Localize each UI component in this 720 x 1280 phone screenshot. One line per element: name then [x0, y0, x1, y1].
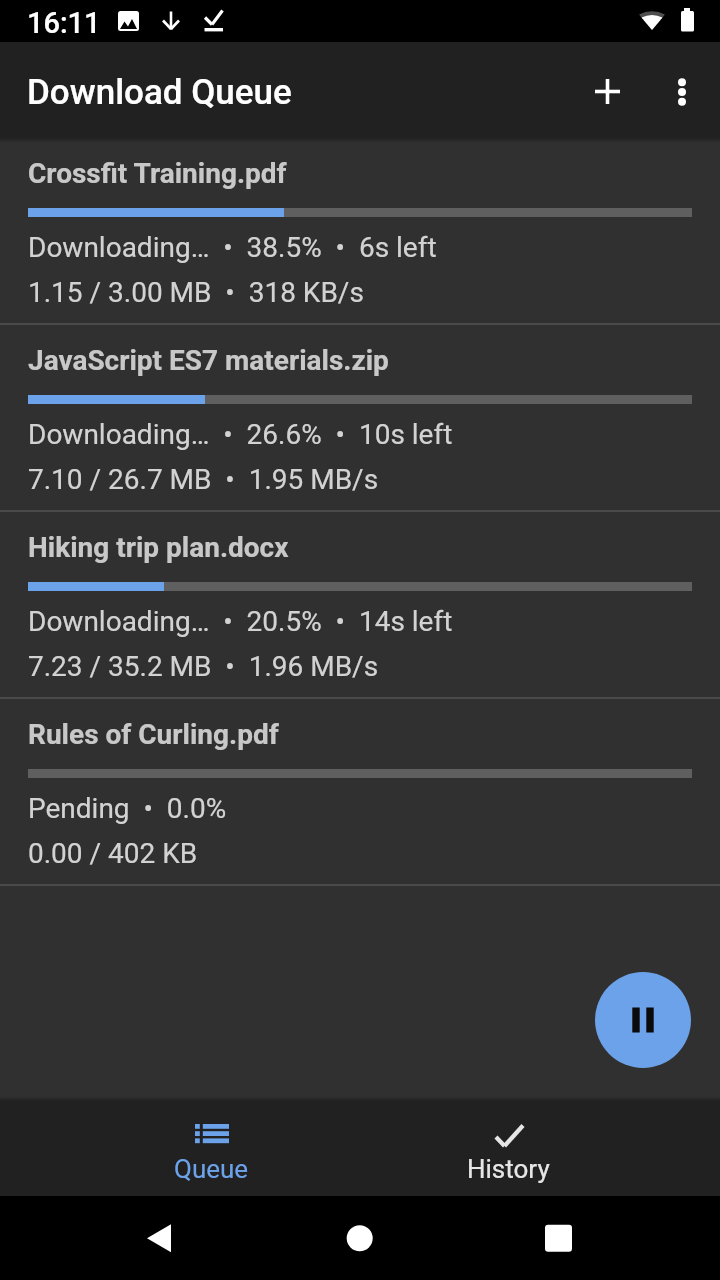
- staticText: Downloading… • 26.6% • 10s left: [28, 418, 453, 451]
- button[interactable]: Pause all downloads: [595, 972, 691, 1068]
- button[interactable]: History: [423, 1101, 594, 1196]
- staticText: Rules of Curling.pdf: [28, 718, 279, 751]
- button[interactable]: Hiking trip plan.docx: [0, 512, 720, 697]
- staticText: 7.10 / 26.7 MB • 1.95 MB/s: [28, 463, 379, 496]
- button[interactable]: More options: [638, 48, 720, 136]
- staticText: 16:11: [27, 6, 101, 40]
- staticText: 0.00 / 402 KB: [28, 837, 198, 870]
- staticText: History: [467, 1154, 550, 1184]
- staticText: JavaScript ES7 materials.zip: [28, 344, 389, 377]
- staticText: 7.23 / 35.2 MB • 1.96 MB/s: [28, 650, 379, 683]
- staticText: Downloading… • 20.5% • 14s left: [28, 605, 453, 638]
- staticText: Pending • 0.0%: [28, 792, 227, 825]
- staticText: Crossfit Training.pdf: [28, 157, 287, 190]
- staticText: Downloading… • 38.5% • 6s left: [28, 231, 437, 264]
- button[interactable]: Add download: [563, 47, 651, 135]
- button[interactable]: Queue: [126, 1101, 297, 1196]
- button[interactable]: Rules of Curling.pdf: [0, 699, 720, 884]
- button[interactable]: Crossfit Training.pdf: [0, 138, 720, 323]
- button[interactable]: JavaScript ES7 materials.zip: [0, 325, 720, 510]
- staticText: 1.15 / 3.00 MB • 318 KB/s: [28, 276, 364, 309]
- staticText: Queue: [174, 1154, 249, 1184]
- staticText: Hiking trip plan.docx: [28, 531, 289, 564]
- staticText: Download Queue: [27, 72, 292, 113]
